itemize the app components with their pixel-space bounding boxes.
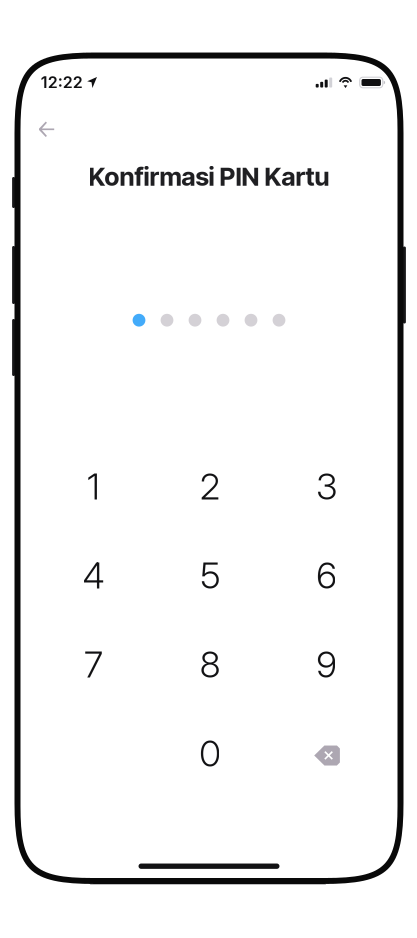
staticText: 2 xyxy=(200,465,221,508)
button[interactable]: 5 xyxy=(153,539,267,611)
staticText: 9 xyxy=(316,643,337,686)
staticText: 6 xyxy=(316,554,337,597)
staticText: 3 xyxy=(316,465,337,508)
button[interactable]: 7 xyxy=(37,628,150,700)
button[interactable]: 6 xyxy=(270,539,384,611)
staticText: 4 xyxy=(83,554,105,597)
button[interactable]: 2 xyxy=(153,450,267,522)
staticText: 0 xyxy=(199,732,221,775)
button[interactable]: 4 xyxy=(37,539,150,611)
button[interactable]: 8 xyxy=(153,628,267,700)
staticText: 7 xyxy=(84,643,103,686)
staticText: 8 xyxy=(200,643,221,686)
staticText: 12:22 xyxy=(41,73,83,92)
button[interactable]: Back xyxy=(27,109,67,149)
button[interactable]: Delete xyxy=(270,717,384,789)
button[interactable]: 3 xyxy=(270,450,384,522)
staticText: Konfirmasi PIN Kartu xyxy=(88,161,329,192)
button[interactable]: 9 xyxy=(270,628,384,700)
staticText: 5 xyxy=(200,554,220,597)
button[interactable]: 0 xyxy=(153,717,267,789)
staticText: 1 xyxy=(87,465,100,508)
button[interactable]: 1 xyxy=(37,450,150,522)
